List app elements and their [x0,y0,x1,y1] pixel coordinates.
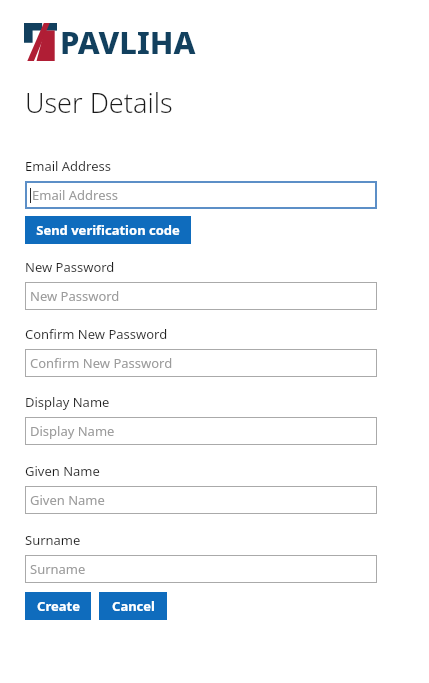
button[interactable]: Confirm New Password [25,349,377,377]
staticText: New Password [30,287,120,305]
staticText: Surname [30,560,86,578]
button[interactable]: Display Name [25,417,377,445]
staticText: User Details [25,84,173,121]
staticText: Given Name [30,491,105,509]
staticText: PAVLIHA [60,21,196,63]
button[interactable]: Send verification code [25,216,191,244]
button[interactable]: New Password [25,282,377,310]
staticText: Display Name [30,422,115,440]
button[interactable]: Email Address [25,181,377,209]
staticText: Given Name [25,462,100,480]
button[interactable]: Create [25,592,91,620]
staticText: Send verification code [36,221,180,239]
staticText: Email Address [25,157,111,175]
staticText: Surname [25,531,81,549]
staticText: Create [37,597,80,615]
button[interactable]: Cancel [99,592,167,620]
button[interactable]: Surname [25,555,377,583]
staticText: New Password [25,258,115,276]
staticText: Email Address [32,186,118,204]
staticText: Cancel [112,597,155,615]
button[interactable]: Given Name [25,486,377,514]
staticText: Confirm New Password [30,354,173,372]
staticText: Confirm New Password [25,325,168,343]
staticText: Display Name [25,393,110,411]
